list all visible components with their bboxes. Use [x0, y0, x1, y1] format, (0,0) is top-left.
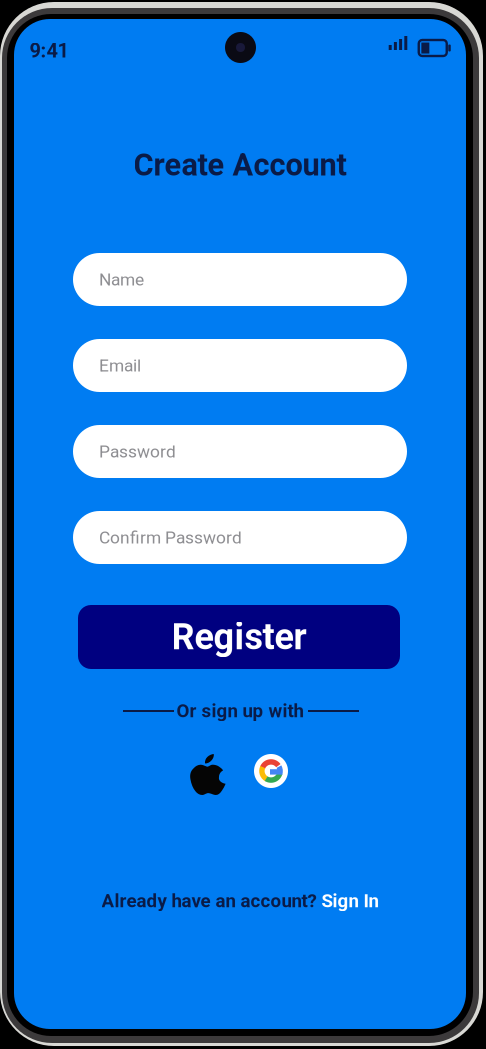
staticText: Or sign up with: [176, 700, 303, 722]
button[interactable]: Sign up with Apple: [190, 754, 226, 795]
button[interactable]: Confirm Password: [73, 511, 407, 564]
staticText: Already have an account?: [101, 890, 316, 912]
button[interactable]: Email: [73, 339, 407, 392]
staticText: Create Account: [133, 147, 346, 183]
staticText: Email: [99, 355, 141, 376]
staticText: Password: [99, 441, 176, 462]
staticText: Register: [171, 616, 306, 658]
button[interactable]: Register: [78, 605, 400, 669]
button[interactable]: Password: [73, 425, 407, 478]
button[interactable]: Name: [73, 253, 407, 306]
staticText: Confirm Password: [99, 527, 242, 548]
button[interactable]: Already have an account?: [14, 890, 466, 912]
staticText: Sign In: [321, 890, 378, 912]
button[interactable]: Sign up with Google: [254, 754, 288, 788]
staticText: Name: [99, 269, 144, 290]
staticText: 9:41: [29, 39, 68, 62]
